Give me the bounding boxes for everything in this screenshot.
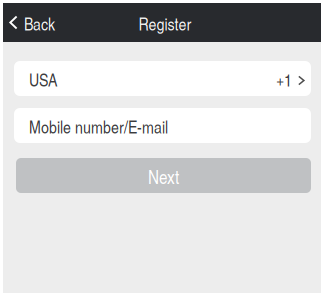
staticText: Next bbox=[148, 164, 179, 189]
button[interactable]: Back bbox=[3, 3, 67, 42]
staticText: Register bbox=[138, 12, 191, 35]
staticText: +1 bbox=[276, 68, 292, 91]
staticText: Mobile number/E-mail bbox=[29, 115, 168, 138]
staticText: Back bbox=[24, 12, 55, 35]
button[interactable]: Next bbox=[3, 158, 321, 193]
staticText: USA bbox=[29, 68, 57, 91]
button[interactable]: USA bbox=[3, 61, 321, 96]
